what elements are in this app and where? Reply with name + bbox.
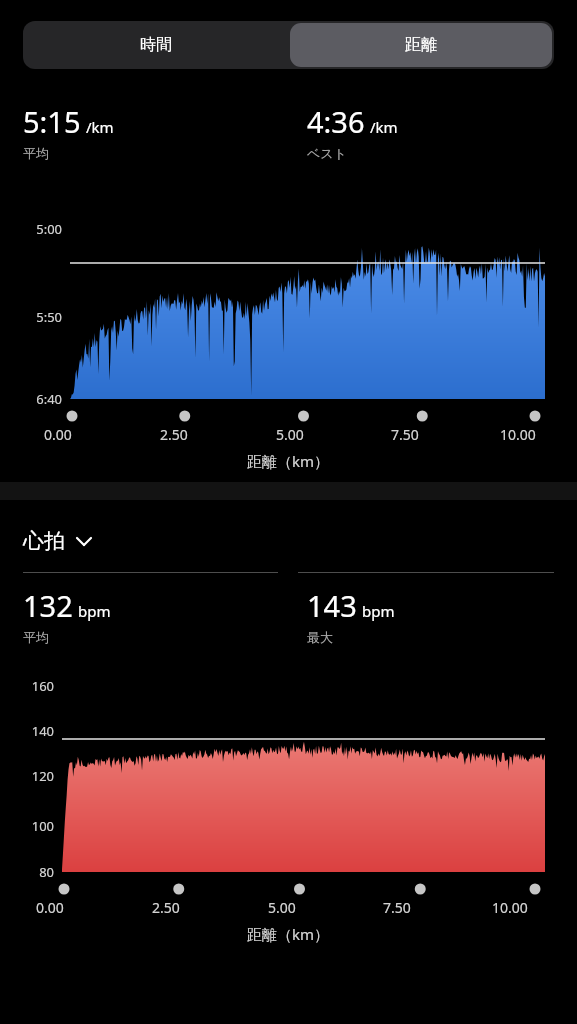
staticText: 最大 bbox=[307, 629, 333, 645]
staticText: 5:50 bbox=[0, 308, 62, 326]
other: Expand heart rate bbox=[74, 531, 94, 551]
staticText: 7.50 bbox=[383, 898, 411, 917]
button[interactable]: 時間 bbox=[23, 21, 288, 69]
staticText: 7.50 bbox=[391, 425, 419, 444]
staticText: 80 bbox=[0, 863, 54, 881]
staticText: 132 bbox=[23, 586, 73, 625]
staticText: 5:00 bbox=[0, 220, 62, 238]
staticText: 0.00 bbox=[36, 898, 64, 917]
staticText: ベスト bbox=[307, 145, 347, 161]
staticText: 5.00 bbox=[268, 898, 296, 917]
staticText: 100 bbox=[0, 817, 54, 835]
staticText: 時間 bbox=[140, 35, 172, 55]
staticText: 120 bbox=[0, 767, 54, 785]
staticText: 距離 bbox=[405, 35, 437, 55]
staticText: /km bbox=[86, 117, 114, 137]
button[interactable]: 心拍 bbox=[23, 528, 577, 554]
staticText: 6:40 bbox=[0, 390, 62, 408]
staticText: bpm bbox=[78, 601, 111, 621]
button[interactable]: 距離 bbox=[290, 23, 552, 67]
staticText: 10.00 bbox=[500, 425, 536, 444]
staticText: bpm bbox=[362, 601, 395, 621]
staticText: 平均 bbox=[23, 629, 49, 645]
staticText: 2.50 bbox=[152, 898, 180, 917]
staticText: 2.50 bbox=[160, 425, 188, 444]
staticText: 4:36 bbox=[307, 102, 365, 141]
staticText: /km bbox=[370, 117, 398, 137]
staticText: 距離（km） bbox=[247, 451, 330, 471]
staticText: 距離（km） bbox=[247, 924, 330, 944]
staticText: 160 bbox=[0, 677, 54, 695]
staticText: 143 bbox=[307, 586, 357, 625]
staticText: 140 bbox=[0, 722, 54, 740]
staticText: 0.00 bbox=[44, 425, 72, 444]
staticText: 10.00 bbox=[492, 898, 528, 917]
staticText: 平均 bbox=[23, 145, 49, 161]
staticText: 5.00 bbox=[276, 425, 304, 444]
staticText: 5:15 bbox=[23, 102, 81, 141]
staticText: 心拍 bbox=[23, 528, 65, 554]
